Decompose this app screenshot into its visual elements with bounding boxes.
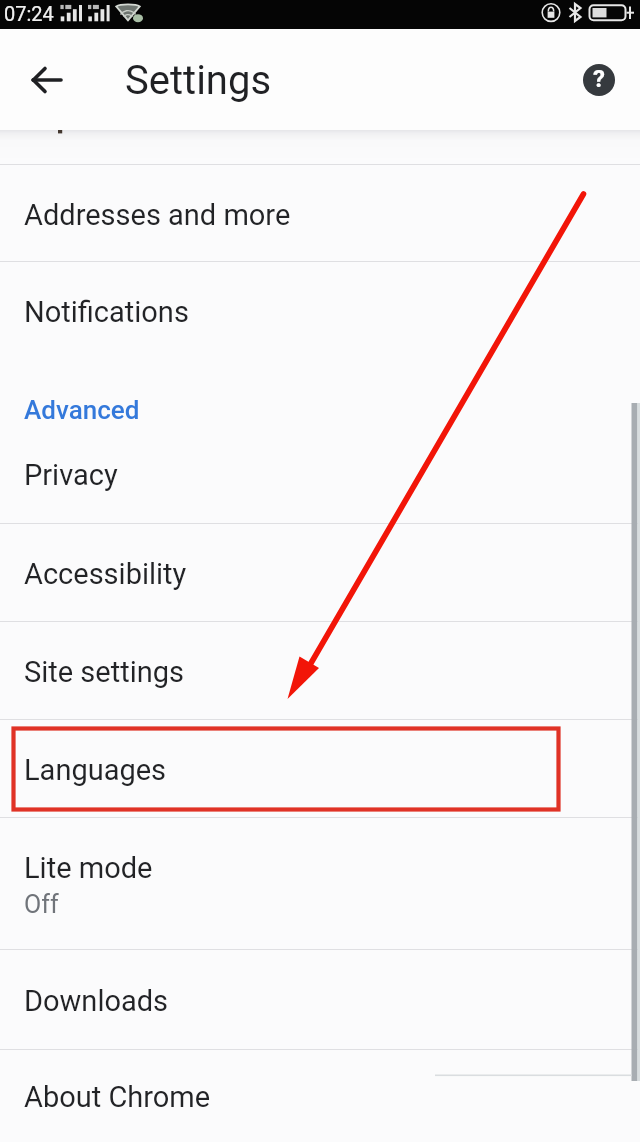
button[interactable]: Notifications (0, 262, 640, 359)
staticText: ? (593, 65, 605, 93)
button[interactable]: Accessibility (0, 524, 640, 621)
button[interactable]: Downloads (0, 950, 640, 1049)
staticText: Downloads (24, 984, 169, 1018)
staticText: Languages (24, 753, 167, 787)
staticText: About Chrome (24, 1080, 211, 1114)
staticText: 07:24 (4, 2, 54, 25)
button[interactable]: Lite mode (0, 818, 640, 949)
button[interactable]: Addresses and more (0, 165, 640, 262)
button[interactable]: Privacy (0, 424, 640, 523)
staticText: Settings (125, 57, 272, 104)
staticText: Addresses and more (24, 198, 291, 232)
staticText: Privacy (24, 458, 118, 492)
button[interactable]: Help and feedback (570, 51, 628, 109)
button[interactable]: Navigate up (12, 44, 84, 116)
staticText: Site settings (24, 655, 184, 689)
button[interactable]: Site settings (0, 622, 640, 719)
staticText: Notifications (24, 295, 189, 329)
staticText: Lite mode (24, 851, 153, 885)
button[interactable]: Languages (0, 720, 640, 817)
staticText: Off (24, 890, 59, 919)
button[interactable]: About Chrome (0, 1050, 640, 1142)
staticText: Advanced (24, 395, 140, 425)
staticText: Accessibility (24, 557, 187, 591)
